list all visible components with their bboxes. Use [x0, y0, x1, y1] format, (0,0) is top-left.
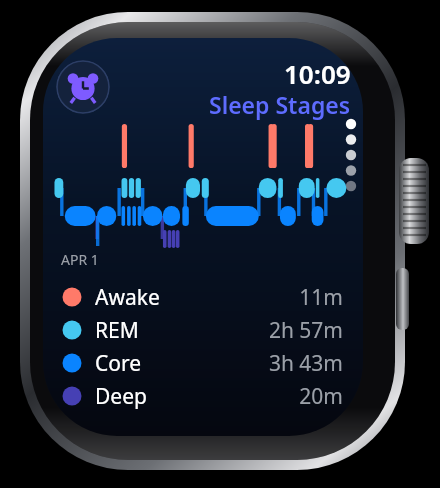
- button[interactable]: [53, 148, 347, 246]
- button[interactable]: [53, 347, 353, 379]
- button[interactable]: Alarm: [56, 60, 110, 114]
- button[interactable]: [163, 56, 353, 122]
- button[interactable]: [53, 281, 353, 313]
- button[interactable]: [53, 380, 353, 412]
- button[interactable]: [53, 314, 353, 346]
